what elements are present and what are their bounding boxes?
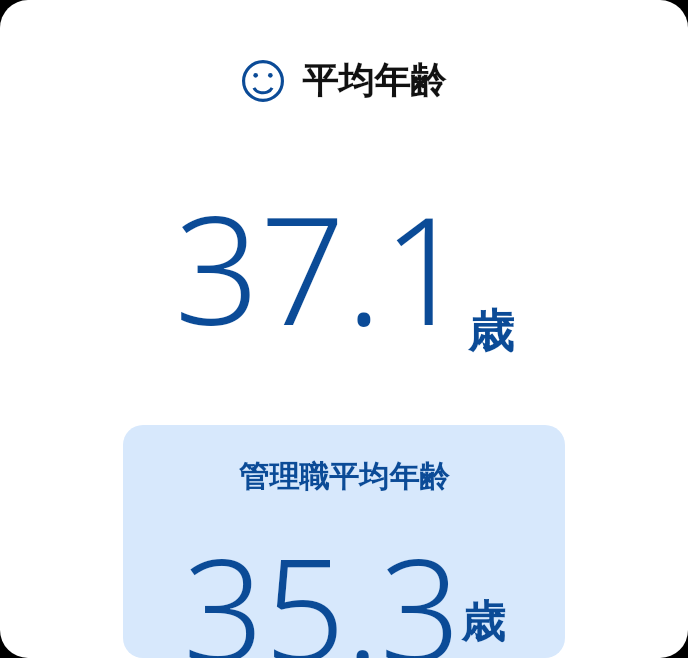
staticText: 35.3 bbox=[183, 510, 461, 658]
staticText: 歳 bbox=[468, 303, 514, 361]
button[interactable]: 管理職平均年齢 bbox=[123, 425, 565, 658]
other: 平均年齢 bbox=[242, 60, 284, 102]
staticText: 歳 bbox=[461, 595, 505, 650]
staticText: 平均年齢 bbox=[302, 58, 446, 103]
staticText: 37.1 bbox=[174, 165, 468, 369]
button[interactable]: 平均年齢 bbox=[0, 0, 688, 658]
staticText: 管理職平均年齢 bbox=[239, 458, 449, 496]
